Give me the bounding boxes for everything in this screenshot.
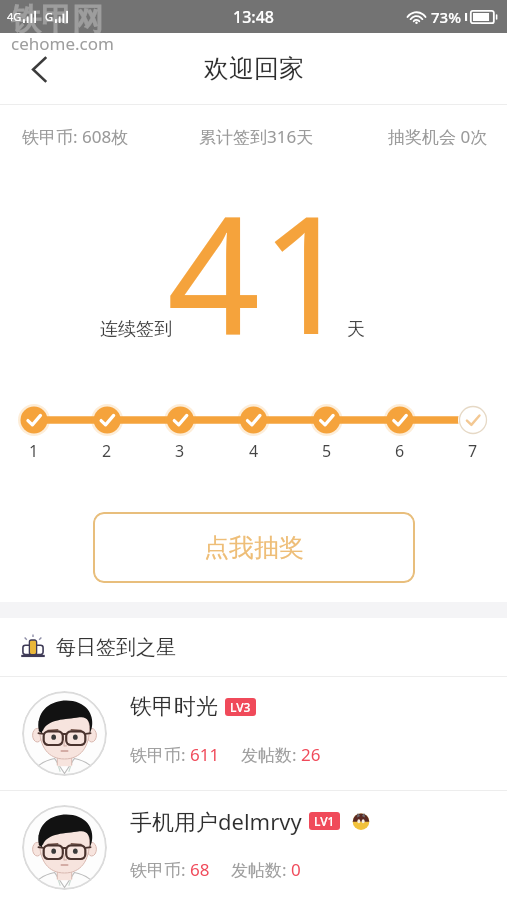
staticText: 41	[167, 160, 354, 360]
staticText: LV3	[230, 699, 251, 715]
staticText: 连续签到	[100, 318, 172, 341]
button[interactable]: 铁甲币: 608枚	[0, 105, 169, 168]
button[interactable]: 手机用户delmrvy	[0, 791, 507, 900]
staticText: 7	[468, 440, 478, 462]
staticText: 6	[395, 440, 405, 462]
staticText: 点我抽奖	[204, 532, 304, 563]
staticText: 发帖数:	[241, 743, 301, 766]
staticText: 手机用户delmrvy	[130, 806, 302, 836]
staticText: 73%	[431, 7, 461, 27]
staticText: G	[45, 9, 54, 24]
staticText: 抽奖机会 0次	[388, 125, 488, 148]
staticText: 累计签到316天	[199, 125, 314, 148]
staticText: 4G	[7, 9, 22, 24]
staticText: 铁甲币: 608枚	[22, 125, 129, 148]
staticText: 1	[29, 440, 39, 462]
staticText: 2	[102, 440, 112, 462]
staticText: 4	[249, 440, 259, 462]
staticText: 铁甲时光	[130, 693, 218, 721]
staticText: 发帖数:	[231, 858, 291, 881]
staticText: 26	[301, 743, 321, 766]
staticText: 3	[175, 440, 185, 462]
staticText: 铁甲币:	[130, 743, 190, 766]
staticText: 天	[347, 318, 365, 341]
button[interactable]: Back	[0, 41, 56, 97]
staticText: 68	[190, 858, 210, 881]
staticText: 铁甲币:	[130, 858, 190, 881]
button[interactable]: 抽奖机会 0次	[338, 105, 507, 168]
button[interactable]: 累计签到316天	[169, 105, 338, 168]
button[interactable]: 铁甲时光	[0, 677, 507, 790]
button[interactable]: 点我抽奖	[93, 512, 415, 583]
staticText: 铁甲网	[10, 0, 103, 39]
staticText: 欢迎回家	[204, 53, 304, 84]
staticText: cehome.com	[11, 32, 114, 55]
staticText: 0	[291, 858, 301, 881]
staticText: 5	[322, 440, 332, 462]
staticText: 611	[190, 743, 220, 766]
staticText: 13:48	[233, 6, 274, 28]
staticText: LV1	[314, 813, 335, 829]
staticText: 每日签到之星	[56, 635, 176, 660]
